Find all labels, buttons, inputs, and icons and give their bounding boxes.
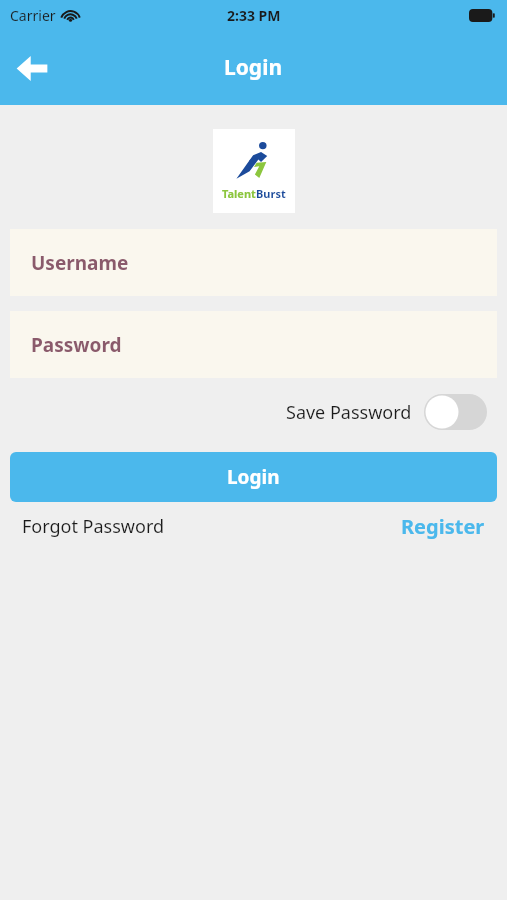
staticText: Carrier [10, 6, 56, 25]
other: Save Password toggle [424, 394, 487, 430]
button[interactable]: Forgot Password [22, 514, 165, 539]
button[interactable]: Login [10, 452, 497, 502]
staticText: Register [401, 513, 485, 540]
button[interactable]: Back [8, 44, 56, 92]
button[interactable]: Password [10, 311, 497, 378]
staticText: Forgot Password [22, 514, 165, 539]
staticText: Login [227, 464, 280, 490]
staticText: Username [31, 250, 129, 276]
staticText: 2:33 PM [227, 6, 281, 25]
staticText: Talent [222, 186, 256, 201]
staticText: Password [31, 332, 122, 358]
staticText: Burst [256, 186, 286, 201]
button[interactable]: Register [401, 513, 485, 540]
button[interactable]: Username [10, 229, 497, 296]
staticText: Login [224, 53, 283, 82]
staticText: Save Password [286, 400, 412, 425]
button[interactable]: Save Password [286, 394, 487, 430]
